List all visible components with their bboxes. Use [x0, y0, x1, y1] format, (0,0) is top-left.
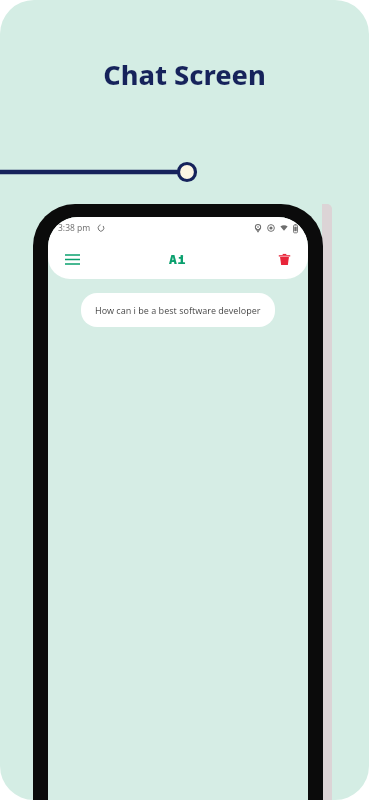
staticText: Chat Screen — [103, 56, 266, 93]
button[interactable]: Ai — [169, 250, 187, 268]
button[interactable]: Menu — [56, 243, 88, 275]
staticText: Ai — [169, 250, 187, 268]
button[interactable]: How can i be a best software developer — [81, 293, 275, 327]
staticText: 3:38 pm — [58, 222, 91, 234]
staticText: How can i be a best software developer — [95, 304, 261, 316]
button[interactable]: Delete chat — [268, 243, 300, 275]
